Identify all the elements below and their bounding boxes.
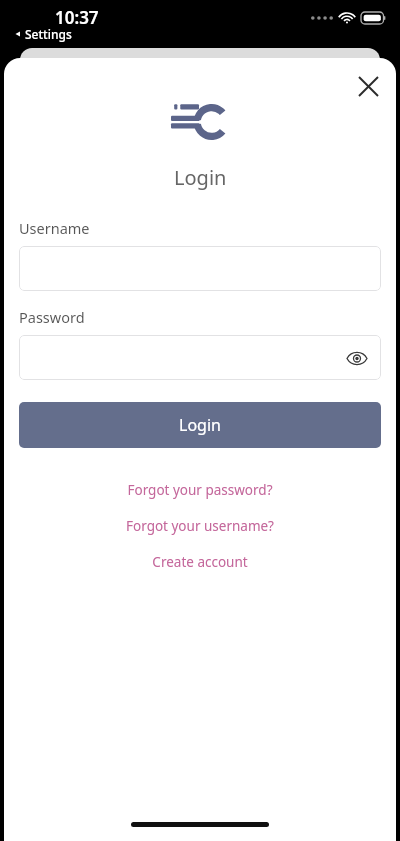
staticText: Login — [179, 414, 221, 436]
button[interactable]: Username field — [19, 246, 381, 291]
button[interactable]: Forgot your password? — [4, 476, 396, 504]
staticText: Forgot your username? — [126, 517, 274, 535]
staticText: Login — [174, 164, 227, 191]
staticText: Settings — [25, 26, 72, 42]
staticText: Password — [19, 307, 85, 327]
button[interactable]: Forgot your username? — [4, 512, 396, 540]
button[interactable]: Create account — [4, 548, 396, 576]
staticText: Create account — [152, 553, 248, 571]
button[interactable]: Password field — [19, 335, 381, 380]
staticText: 10:37 — [55, 6, 99, 29]
staticText: Forgot your password? — [127, 481, 273, 499]
staticText: Username — [19, 218, 90, 238]
button[interactable]: Close — [348, 66, 388, 106]
button[interactable]: Login — [19, 402, 381, 448]
button[interactable]: Show password — [339, 340, 375, 376]
